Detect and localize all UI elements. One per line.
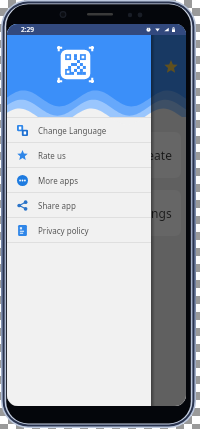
button[interactable]: Change Language [7, 118, 151, 142]
staticText: Change Language [38, 125, 107, 136]
button[interactable]: Create [12, 132, 181, 178]
staticText: 2:29 [21, 25, 34, 34]
staticText: More apps [38, 175, 78, 186]
staticText: Privacy policy [38, 225, 89, 236]
button[interactable]: Privacy policy [7, 218, 151, 242]
staticText: Share app [38, 200, 76, 211]
button[interactable]: Share app [7, 193, 151, 217]
staticText: Rate us [38, 150, 66, 161]
staticText: Create [135, 147, 172, 163]
button[interactable]: More apps [7, 168, 151, 192]
staticText: Settings [126, 205, 172, 221]
button[interactable]: Settings [12, 190, 181, 236]
button[interactable]: Favorites [162, 58, 180, 76]
button[interactable]: Rate us [7, 143, 151, 167]
